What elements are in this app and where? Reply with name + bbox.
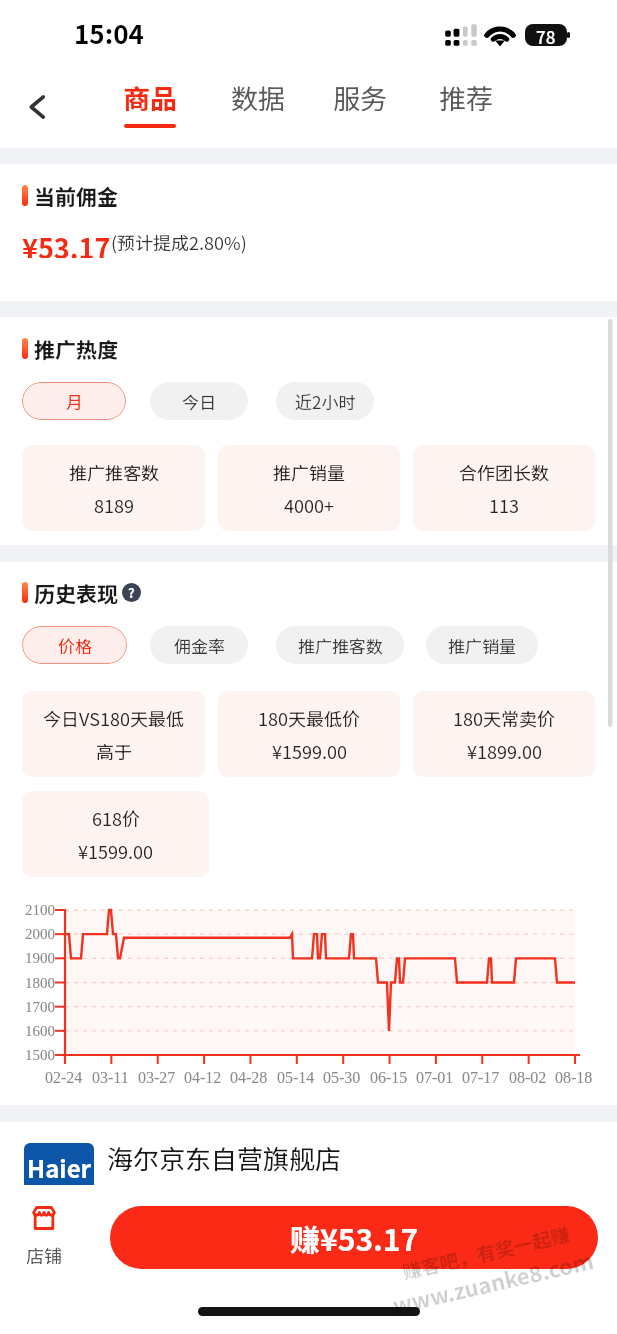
staticText: 1700 — [25, 999, 55, 1016]
button[interactable]: 近2小时 — [276, 382, 374, 420]
staticText: 4000+ — [284, 492, 334, 518]
staticText: 04-12 — [184, 1069, 222, 1087]
staticText: 07-17 — [462, 1069, 500, 1087]
button[interactable]: 合作团长数 — [413, 445, 595, 531]
button[interactable]: 推广推客数 — [276, 626, 404, 664]
staticText: 佣金率 — [174, 633, 225, 658]
staticText: 今日VS180天最低 — [43, 705, 184, 731]
staticText: ? — [128, 583, 135, 602]
staticText: ¥53.17 — [22, 228, 111, 258]
staticText: 180天常卖价 — [453, 705, 555, 731]
staticText: (预计提成2.80%) — [111, 229, 247, 255]
button[interactable]: 价格 — [22, 626, 127, 664]
staticText: 05-14 — [277, 1069, 315, 1087]
staticText: 15:04 — [74, 14, 144, 52]
button[interactable]: 月 — [22, 382, 126, 420]
staticText: 07-01 — [416, 1069, 454, 1087]
staticText: ¥1899.00 — [467, 738, 542, 764]
staticText: 推广销量 — [448, 633, 516, 658]
button[interactable]: 推广推客数 — [22, 445, 205, 531]
staticText: 02-24 — [45, 1069, 83, 1087]
button[interactable]: 推广销量 — [426, 626, 538, 664]
staticText: 高于 — [96, 738, 132, 764]
button[interactable]: 推广销量 — [218, 445, 400, 531]
staticText: 2000 — [25, 926, 55, 943]
staticText: 推荐 — [439, 78, 493, 117]
staticText: 月 — [66, 389, 83, 414]
staticText: 推广销量 — [273, 459, 345, 485]
staticText: 8189 — [94, 492, 134, 518]
staticText: 今日 — [182, 389, 216, 414]
staticText: 1800 — [25, 975, 55, 992]
staticText: 历史表现 — [34, 578, 118, 606]
staticText: 113 — [489, 492, 519, 518]
staticText: 2100 — [25, 902, 55, 919]
staticText: 03-27 — [138, 1069, 176, 1087]
staticText: 价格 — [58, 633, 92, 658]
staticText: ¥1599.00 — [272, 738, 347, 764]
button[interactable]: 今日 — [150, 382, 248, 420]
staticText: 近2小时 — [295, 389, 356, 414]
staticText: 1600 — [25, 1023, 55, 1040]
staticText: 商品 — [123, 78, 177, 117]
staticText: 78 — [536, 24, 556, 46]
button[interactable]: 商品 — [98, 78, 202, 128]
staticText: 618价 — [92, 805, 140, 831]
button[interactable]: 618价 — [22, 791, 209, 877]
staticText: Haier — [27, 1150, 92, 1185]
staticText: 08-02 — [509, 1069, 547, 1087]
staticText: 店铺 — [26, 1242, 62, 1268]
staticText: 04-28 — [230, 1069, 268, 1087]
staticText: 08-18 — [555, 1069, 593, 1087]
button[interactable]: 推荐 — [414, 78, 518, 128]
staticText: 服务 — [333, 78, 387, 117]
button[interactable]: 180天最低价 — [218, 691, 400, 777]
staticText: 合作团长数 — [459, 459, 549, 485]
button[interactable]: 180天常卖价 — [413, 691, 595, 777]
staticText: 海尔京东自营旗舰店 — [107, 1139, 342, 1177]
staticText: 当前佣金 — [34, 181, 118, 209]
staticText: 推广推客数 — [298, 633, 383, 658]
button[interactable]: 数据 — [206, 78, 310, 128]
button[interactable]: 服务 — [308, 78, 412, 128]
button[interactable]: Back — [14, 83, 62, 131]
staticText: 06-15 — [370, 1069, 408, 1087]
staticText: 1900 — [25, 950, 55, 967]
staticText: 推广推客数 — [69, 459, 159, 485]
button[interactable]: 赚¥53.17 — [110, 1206, 598, 1269]
staticText: www.zuanke8.com — [389, 1243, 597, 1320]
staticText: 赚客吧，有奖一起赚 — [399, 1219, 573, 1285]
button[interactable]: 佣金率 — [150, 626, 248, 664]
staticText: 180天最低价 — [258, 705, 360, 731]
button[interactable]: 今日VS180天最低 — [22, 691, 205, 777]
staticText: 03-11 — [92, 1069, 129, 1087]
staticText: 1500 — [25, 1047, 55, 1064]
button[interactable]: 店铺 — [14, 1206, 74, 1268]
staticText: 数据 — [231, 78, 285, 117]
staticText: 推广热度 — [34, 334, 118, 362]
staticText: 05-30 — [323, 1069, 361, 1087]
staticText: ¥1599.00 — [78, 838, 153, 864]
staticText: 赚¥53.17 — [290, 1216, 419, 1259]
